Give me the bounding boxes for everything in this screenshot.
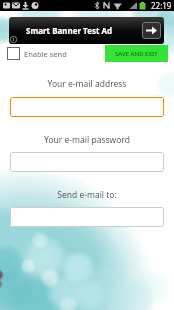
button[interactable]: [142, 22, 161, 39]
staticText: SAVE AND EXIT: [115, 50, 158, 58]
button[interactable]: [10, 207, 164, 227]
staticText: Your e-mail password: [0, 134, 174, 146]
button[interactable]: SAVE AND EXIT: [105, 45, 168, 62]
button[interactable]: [10, 97, 164, 117]
staticText: Enable send: [24, 49, 67, 59]
staticText: Your e-mail address: [0, 78, 174, 90]
button[interactable]: Enable send: [7, 47, 67, 60]
staticText: Send e-mail to:: [0, 189, 174, 201]
button[interactable]: Smart Banner Test Ad: [9, 17, 164, 44]
button[interactable]: [10, 152, 164, 172]
staticText: 22:19: [151, 0, 172, 11]
staticText: Smart Banner Test Ad: [26, 25, 113, 36]
